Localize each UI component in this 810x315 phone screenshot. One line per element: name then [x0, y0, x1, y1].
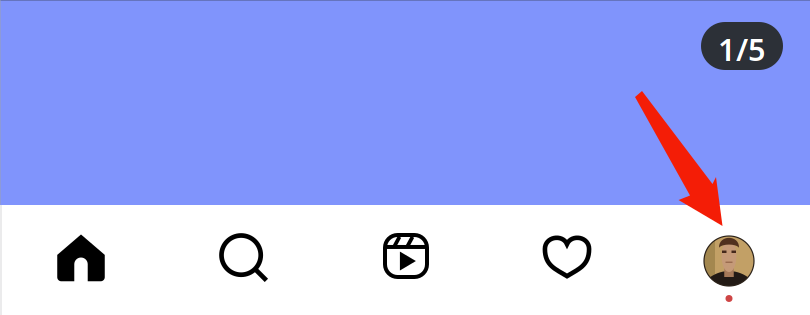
button[interactable]: Home — [0, 205, 162, 315]
staticText: 1/5 — [718, 29, 766, 69]
button[interactable]: Search — [162, 205, 324, 315]
button[interactable]: Profile — [648, 205, 810, 315]
button[interactable]: Reels — [324, 205, 486, 315]
button[interactable]: Likes — [486, 205, 648, 315]
